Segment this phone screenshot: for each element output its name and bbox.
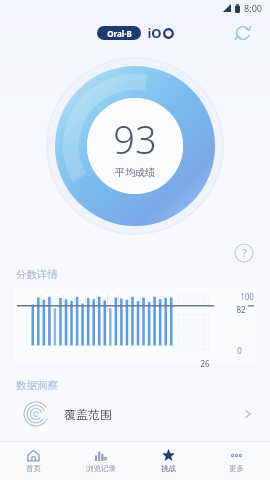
button[interactable]: 更多 (202, 442, 270, 480)
button[interactable]: 浏览记录 (67, 442, 134, 480)
staticText: 100 (240, 291, 254, 302)
staticText: 0 (237, 345, 242, 356)
staticText: 平均成绩 (115, 166, 155, 179)
button[interactable]: 挑战 (134, 442, 202, 480)
staticText: iO (147, 24, 162, 42)
staticText: 26 (200, 358, 210, 369)
staticText: 更多 (229, 464, 244, 473)
staticText: 数据洞察 (16, 379, 58, 392)
button[interactable]: Help (234, 243, 254, 263)
staticText: 首页 (26, 464, 41, 473)
staticText: 浏览记录 (86, 464, 116, 473)
staticText: 93 (113, 113, 157, 165)
button[interactable]: 覆盖范围 (0, 394, 270, 434)
staticText: Oral·B (107, 28, 132, 39)
staticText: 8:00 (244, 2, 262, 14)
button[interactable]: 首页 (0, 442, 67, 480)
button[interactable]: 100 (14, 287, 256, 369)
staticText: ? (242, 246, 247, 260)
staticText: 分数详情 (16, 268, 58, 281)
staticText: 挑战 (161, 464, 176, 473)
button[interactable]: Refresh (230, 20, 256, 46)
staticText: 覆盖范围 (64, 407, 112, 422)
staticText: 82 (236, 304, 246, 315)
